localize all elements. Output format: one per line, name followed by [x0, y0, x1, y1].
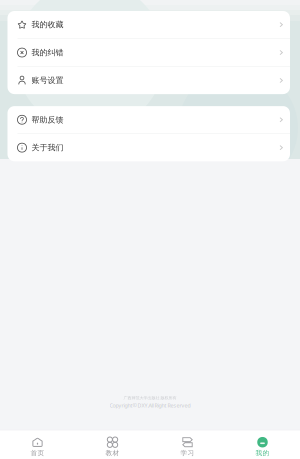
staticText: 帮助反馈 — [31, 115, 63, 125]
button[interactable]: 我的收藏 — [7, 11, 290, 38]
button[interactable]: 帮助反馈 — [7, 106, 290, 133]
staticText: 关于我们 — [31, 143, 63, 152]
staticText: 我的 — [255, 449, 269, 457]
staticText: 教材 — [105, 449, 119, 457]
button[interactable]: 我的 — [225, 430, 300, 459]
staticText: 学习 — [180, 449, 194, 457]
button[interactable]: 学习 — [150, 430, 225, 459]
staticText: 广西师范大学出版社 版权所有 — [123, 395, 176, 400]
button[interactable]: 账号设置 — [7, 67, 290, 94]
button[interactable]: 首页 — [0, 430, 75, 459]
button[interactable]: 关于我们 — [7, 134, 290, 161]
staticText: 我的纠错 — [31, 48, 63, 57]
button[interactable]: 教材 — [75, 430, 150, 459]
staticText: Copyright© DXY.All Right Reserved — [109, 402, 190, 409]
button[interactable]: 我的纠错 — [7, 39, 290, 66]
staticText: 账号设置 — [31, 75, 63, 85]
staticText: 首页 — [30, 449, 44, 457]
staticText: 我的收藏 — [31, 20, 63, 29]
